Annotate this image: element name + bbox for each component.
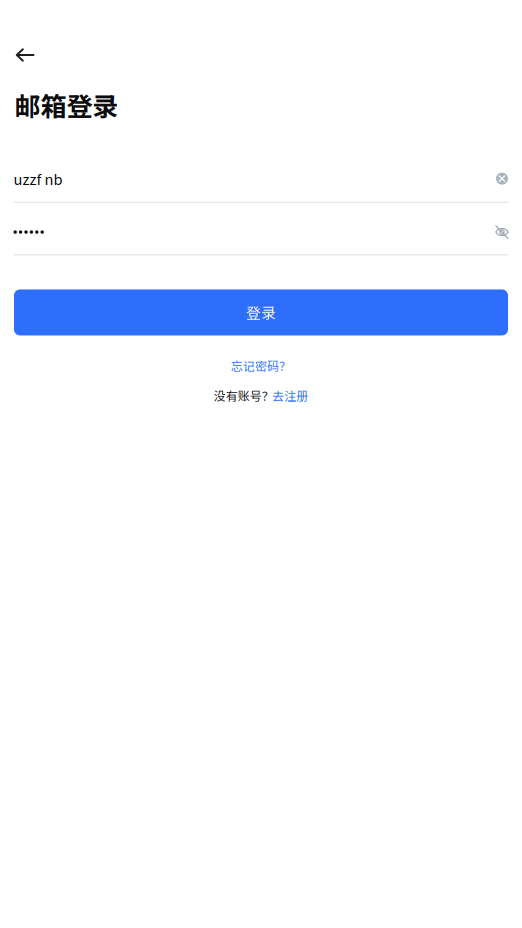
staticText: 去注册 — [272, 387, 308, 404]
staticText: 忘记密码？ — [231, 357, 291, 374]
staticText: 没有账号？ — [214, 387, 274, 404]
button[interactable]: 登录 — [14, 289, 508, 335]
staticText: 邮箱登录 — [15, 86, 119, 124]
button[interactable]: Clear text — [489, 166, 515, 192]
staticText: uzzf nb — [13, 168, 62, 189]
button[interactable]: 忘记密码？ — [0, 357, 522, 373]
button[interactable]: Show password — [489, 219, 515, 245]
staticText: 登录 — [246, 302, 276, 323]
button[interactable]: Back — [8, 38, 42, 72]
button[interactable]: 去注册 — [272, 387, 308, 404]
